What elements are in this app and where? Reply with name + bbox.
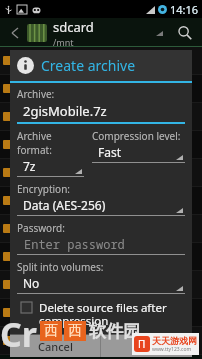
button[interactable]: Delete source files after compression [17,300,185,334]
staticText: Split into volumes: [17,260,104,274]
staticText: 14:16 [170,2,199,17]
button[interactable]: No [17,275,185,294]
staticText: 2gisMobile.7z [23,102,107,120]
button[interactable] [0,103,202,130]
staticText: sdcard [53,18,94,36]
staticText: /mnt [53,36,74,47]
staticText: OK [139,339,155,354]
staticText: Create archive [41,56,136,75]
button[interactable] [0,131,202,158]
button[interactable]: OK [101,335,192,357]
staticText: Password: [17,221,65,235]
staticText: www.tty123.com [152,346,192,353]
button[interactable]: 7z [17,158,84,177]
staticText: No [23,275,176,291]
button[interactable] [0,159,202,186]
staticText: 天天游戏网 [152,335,197,346]
button[interactable]: Enter password [17,236,185,255]
button[interactable]: Sort [152,26,166,40]
button[interactable]: Data (AES-256) [17,197,185,216]
staticText: Cr [0,311,38,351]
staticText: Cancel [38,339,73,354]
staticText: 软件园 [89,321,140,342]
staticText: Data (AES-256) [23,197,176,213]
staticText: Enter password [24,236,125,252]
button[interactable]: Fast [92,144,185,163]
button[interactable]: Up [3,21,27,45]
staticText: Delete source files after compression [39,300,185,329]
button[interactable]: Search [174,22,196,44]
staticText: 西 [68,322,82,340]
staticText: Compression level: [92,129,181,143]
staticText: 7z [23,158,75,174]
button[interactable] [0,271,202,298]
staticText: Archive format: [17,129,84,157]
button[interactable] [0,47,202,74]
staticText: П [138,337,146,351]
button[interactable] [0,75,202,102]
button[interactable]: 2gisMobile.7z [17,102,185,124]
button[interactable] [0,243,202,270]
button[interactable] [0,327,202,354]
staticText: Fast [98,144,176,160]
staticText: Archive: [17,87,55,101]
button[interactable]: Cancel [10,335,100,357]
staticText: 西 [44,322,58,340]
button[interactable] [0,299,202,326]
staticText: Encryption: [17,182,71,196]
button[interactable] [0,215,202,242]
button[interactable] [0,187,202,214]
